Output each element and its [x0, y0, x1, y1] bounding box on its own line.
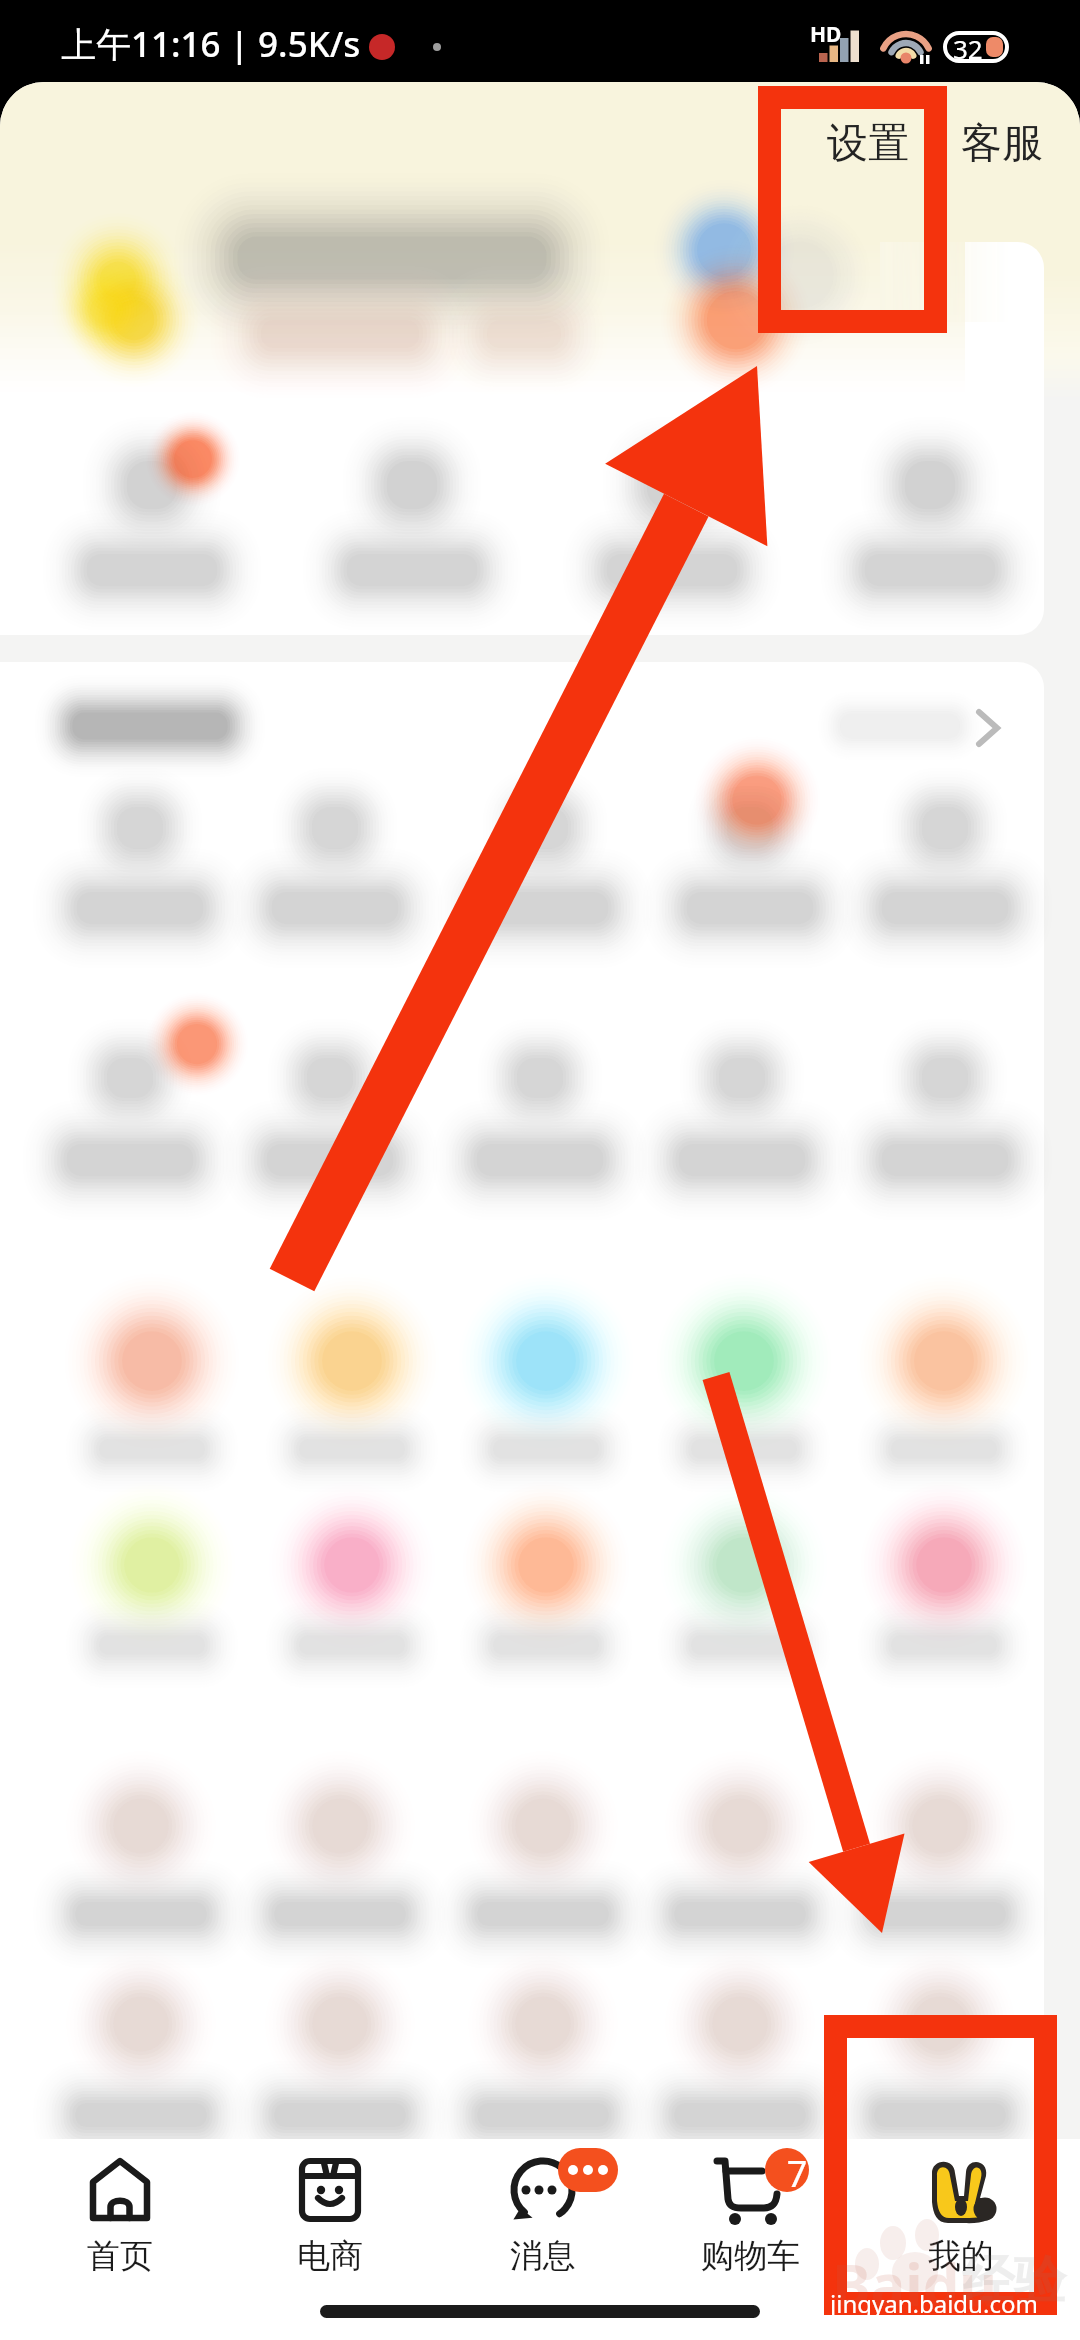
button[interactable]: 应用 $row-${i + 1}	[645, 1315, 841, 1490]
button[interactable]: 服务 $row-${i + 1}	[445, 1040, 641, 1205]
button[interactable]: 服务 $row-${i + 1}	[42, 790, 238, 955]
button[interactable]: 应用 $row-${i + 1}	[447, 1315, 643, 1490]
button[interactable]: 订单入口 ${i + 1}	[567, 430, 777, 605]
button[interactable]: 应用 $row-${i + 1}	[645, 1520, 841, 1695]
staticText: 7	[777, 2149, 817, 2198]
button[interactable]: 服务 $row-${i + 1}	[845, 790, 1041, 955]
button[interactable]: 设置	[821, 112, 915, 176]
staticText: 32	[953, 31, 983, 66]
staticText: Baidu	[832, 2244, 998, 2323]
staticText: 客服	[961, 118, 1043, 170]
button[interactable]: 首页	[12, 2139, 228, 2289]
button[interactable]: 应用 $row-${i + 1}	[645, 1775, 841, 1950]
button[interactable]: 电商	[222, 2139, 438, 2289]
button[interactable]: 服务 $row-${i + 1}	[646, 1040, 842, 1205]
staticText: 购物车	[701, 2235, 800, 2277]
button[interactable]: 应用 $row-${i + 1}	[845, 1520, 1041, 1695]
button[interactable]: 应用 $row-${i + 1}	[447, 1520, 643, 1695]
staticText: 电商	[297, 2235, 363, 2277]
button[interactable]: 订单入口 ${i + 1}	[47, 430, 257, 605]
button[interactable]: 个人资料	[40, 215, 780, 365]
button[interactable]: 服务 $row-${i + 1}	[646, 790, 842, 955]
staticText: 消息	[510, 2235, 576, 2277]
staticText: 首页	[87, 2235, 153, 2277]
staticText: 上午11:16 | 9.5K/s	[61, 20, 361, 68]
button[interactable]: 应用 $row-${i + 1}	[845, 1315, 1041, 1490]
staticText: 设置	[827, 118, 909, 170]
button[interactable]: 应用 $row-${i + 1}	[845, 1775, 1041, 1950]
button[interactable]: 订单入口 ${i + 1}	[825, 430, 1035, 605]
button[interactable]: 应用 $row-${i + 1}	[447, 1775, 643, 1950]
staticText: 我的	[928, 2235, 994, 2277]
button[interactable]: 订单入口 ${i + 1}	[307, 430, 517, 605]
staticText: 经验	[962, 2248, 1066, 2314]
button[interactable]: 客服	[955, 112, 1049, 176]
staticText: jingyan.baidu.com	[830, 2287, 1038, 2320]
button[interactable]: 查看更多	[850, 690, 1020, 770]
button[interactable]: 服务 $row-${i + 1}	[445, 790, 641, 955]
button[interactable]: 应用 $row-${i + 1}	[252, 1975, 448, 2150]
button[interactable]: 应用 $row-${i + 1}	[252, 1315, 448, 1490]
button[interactable]: 应用 $row-${i + 1}	[52, 1975, 248, 2150]
button[interactable]: 应用 $row-${i + 1}	[52, 1315, 248, 1490]
button[interactable]: 应用 $row-${i + 1}	[447, 1975, 643, 2150]
button[interactable]: 应用 $row-${i + 1}	[645, 1975, 841, 2150]
staticText: HD	[810, 20, 842, 49]
button[interactable]: 应用 $row-${i + 1}	[52, 1775, 248, 1950]
button[interactable]: 我的	[853, 2139, 1069, 2289]
button[interactable]: 服务 $row-${i + 1}	[42, 1040, 238, 1205]
button[interactable]: 应用 $row-${i + 1}	[845, 1975, 1041, 2150]
button[interactable]: 应用 $row-${i + 1}	[252, 1775, 448, 1950]
button[interactable]: 应用 $row-${i + 1}	[52, 1520, 248, 1695]
button[interactable]: 服务 $row-${i + 1}	[240, 790, 436, 955]
button[interactable]: 服务 $row-${i + 1}	[240, 1040, 436, 1205]
button[interactable]: 服务 $row-${i + 1}	[845, 1040, 1041, 1205]
button[interactable]: 购物车	[642, 2139, 858, 2289]
button[interactable]: 应用 $row-${i + 1}	[252, 1520, 448, 1695]
button[interactable]: 消息	[435, 2139, 651, 2289]
